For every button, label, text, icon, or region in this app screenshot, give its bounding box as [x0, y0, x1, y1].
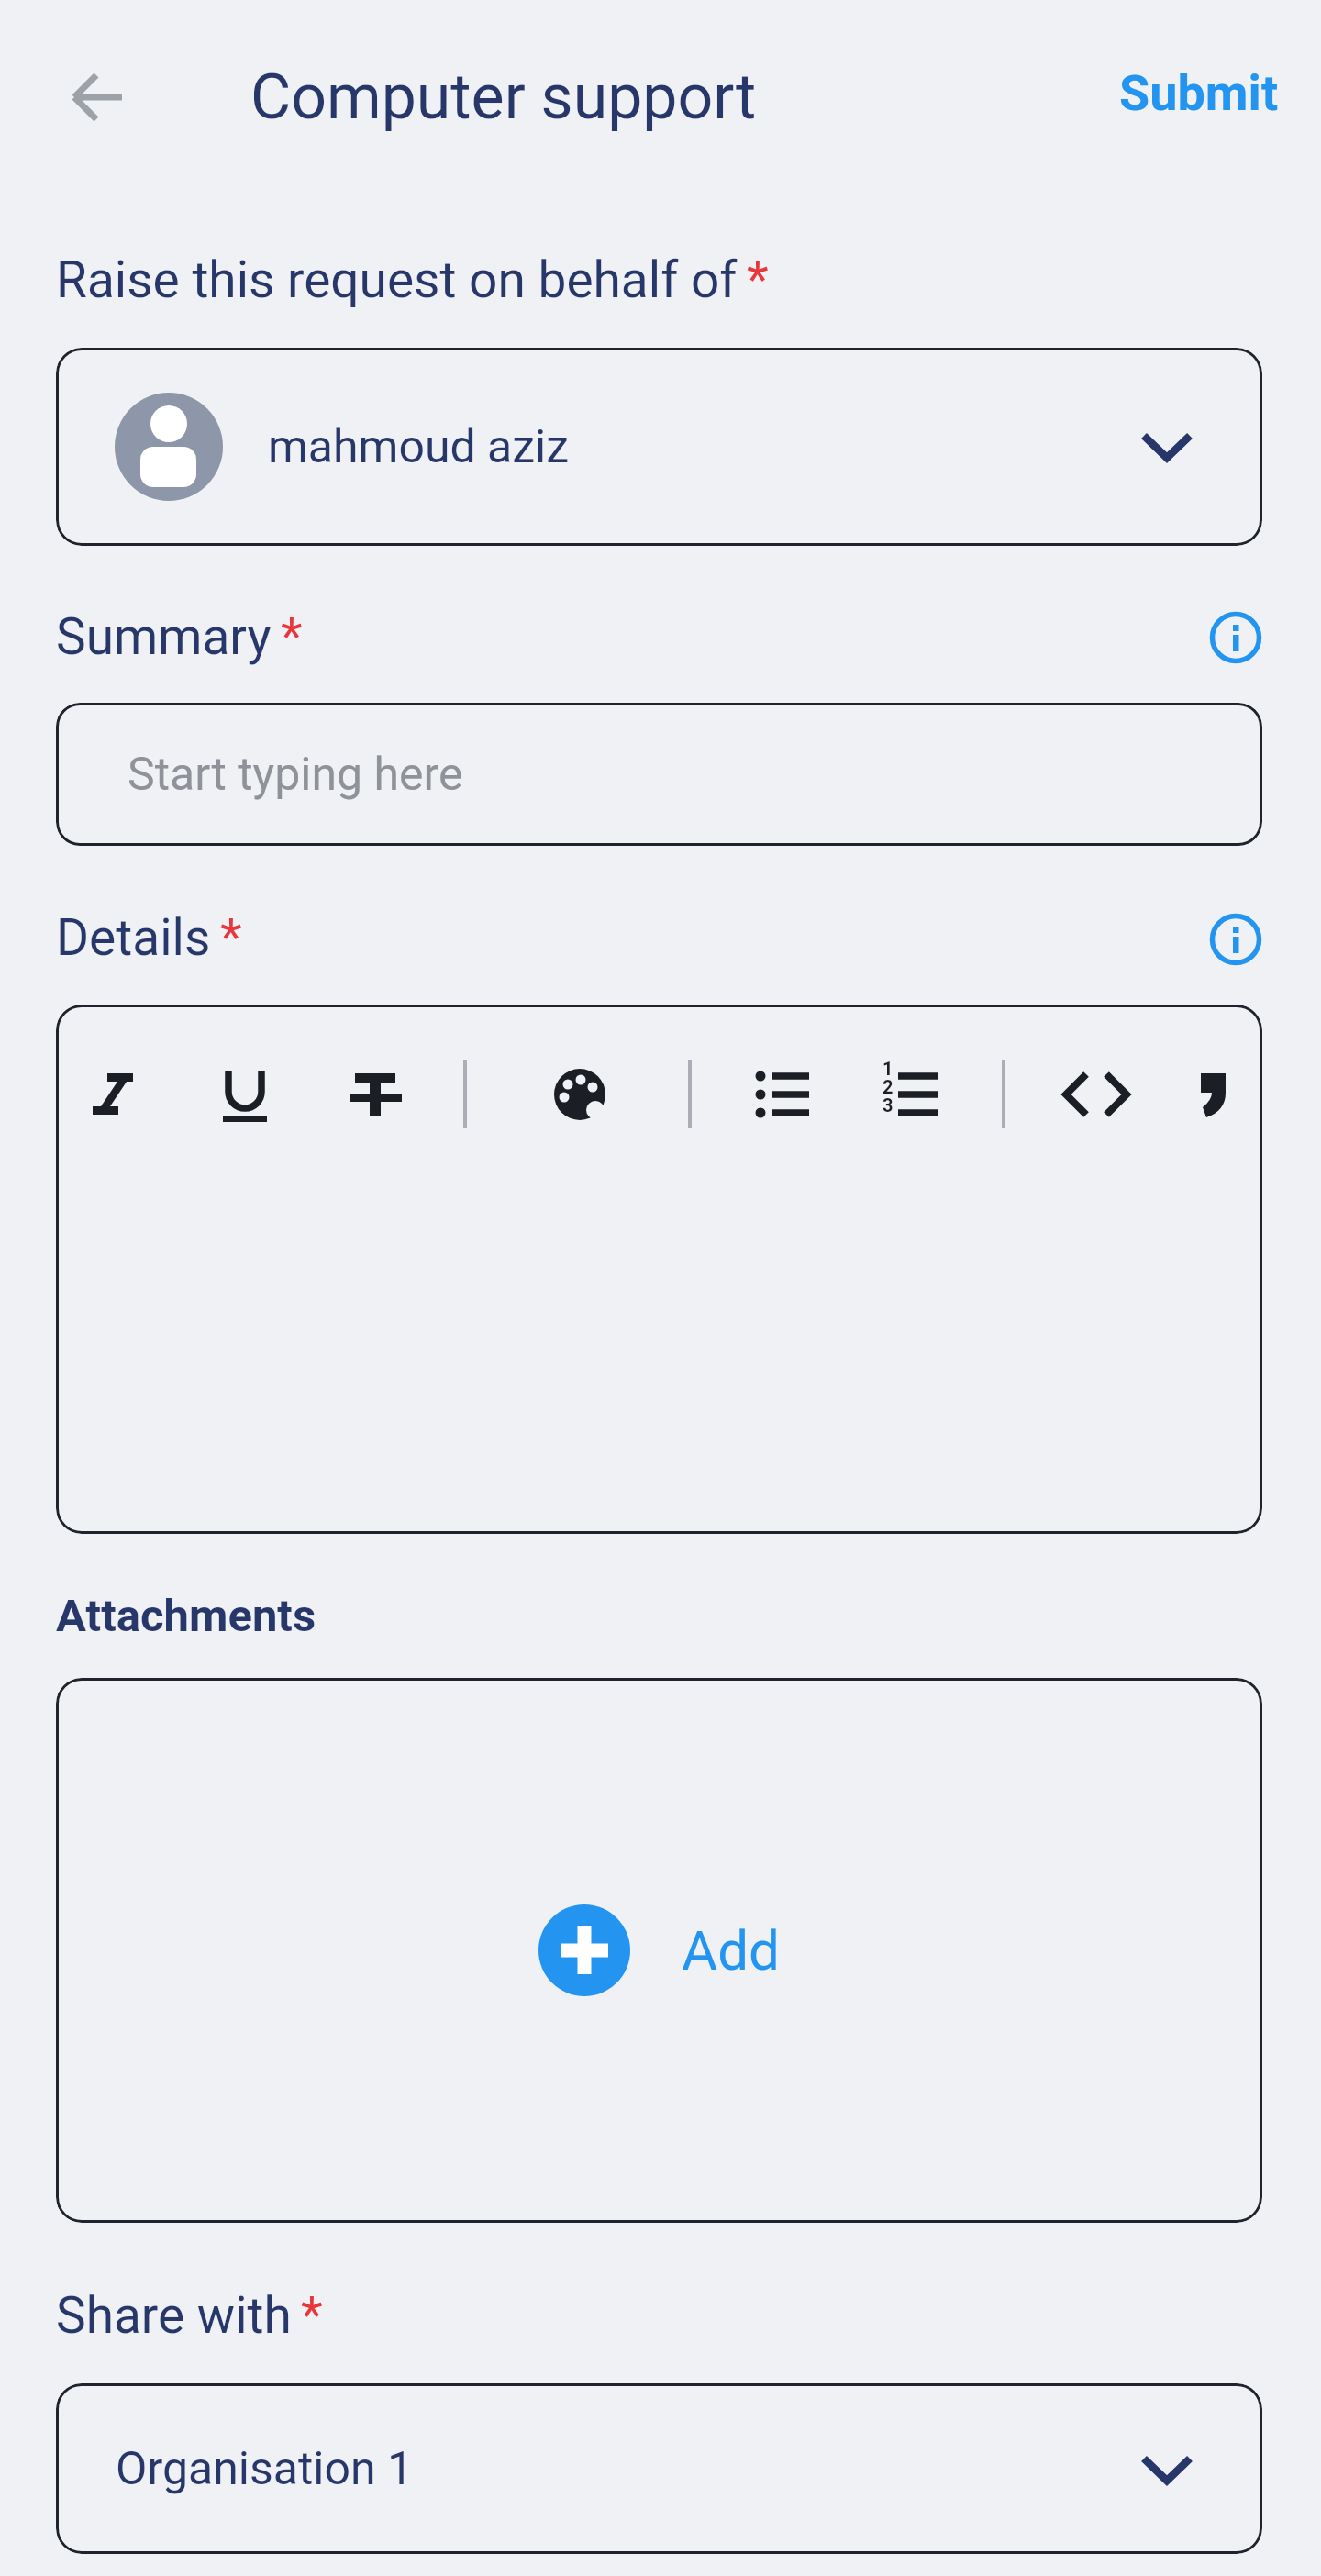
button[interactable]: Submit — [1119, 64, 1279, 122]
button[interactable] — [69, 1049, 161, 1140]
button[interactable]: Start typing here — [56, 703, 1262, 846]
button[interactable]: mahmoud aziz — [56, 348, 1262, 546]
button[interactable] — [329, 1049, 421, 1140]
button[interactable] — [199, 1049, 291, 1140]
staticText: Share with — [56, 2286, 292, 2345]
staticText: Attachments — [56, 1590, 316, 1642]
staticText: * — [281, 607, 303, 666]
staticText: 2 — [883, 1076, 894, 1094]
staticText: 3 — [883, 1094, 894, 1113]
button[interactable] — [1168, 1049, 1260, 1140]
button[interactable] — [738, 1049, 829, 1140]
button[interactable] — [862, 1049, 954, 1140]
staticText: Organisation 1 — [116, 2442, 414, 2496]
staticText: * — [747, 250, 769, 309]
button[interactable]: Add — [56, 1678, 1262, 2223]
staticText: Summary — [56, 607, 272, 666]
button[interactable] — [1050, 1049, 1142, 1140]
staticText: * — [220, 908, 242, 967]
staticText: Raise this request on behalf of — [56, 250, 738, 309]
staticText: Add — [682, 1918, 780, 1982]
staticText: 1 — [883, 1058, 894, 1076]
staticText: Submit — [1119, 64, 1279, 122]
staticText: Details — [56, 908, 211, 967]
button[interactable] — [534, 1049, 626, 1140]
staticText: Computer support — [250, 61, 757, 134]
staticText: * — [301, 2286, 323, 2345]
staticText: mahmoud aziz — [268, 420, 570, 474]
staticText: Start typing here — [128, 748, 463, 802]
button[interactable]: Organisation 1 — [56, 2383, 1262, 2554]
button[interactable]: 1 — [56, 1005, 1262, 1534]
button[interactable] — [51, 51, 143, 143]
